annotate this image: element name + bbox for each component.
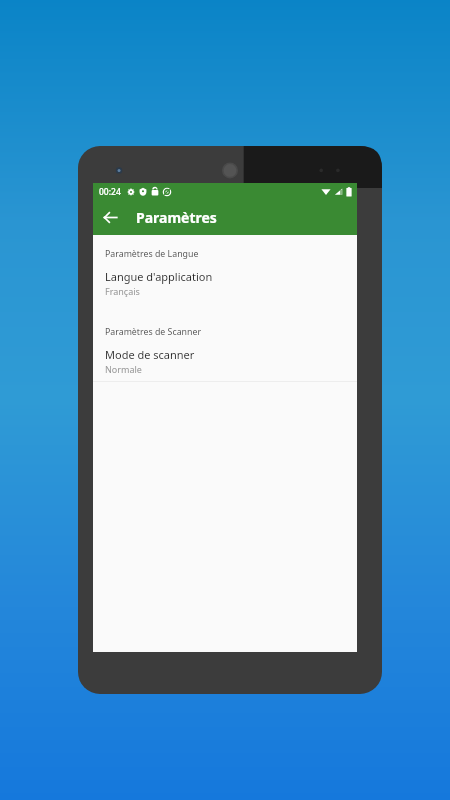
staticText: Paramètres [136,208,217,227]
staticText: Normale [105,363,142,375]
staticText: Français [105,285,140,297]
staticText: Paramètres de Scanner [105,326,202,338]
button[interactable]: Back [93,200,128,235]
button[interactable]: Langue d'application [93,265,357,303]
staticText: 00:24 [99,186,121,198]
staticText: Paramètres de Langue [105,248,199,260]
staticText: Langue d'application [105,269,213,284]
button[interactable]: Mode de scanner [93,343,357,381]
staticText: Mode de scanner [105,347,195,362]
